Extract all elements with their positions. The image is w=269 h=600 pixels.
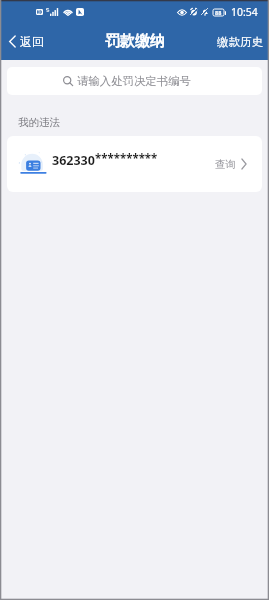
button[interactable]: 362330 [7,136,262,192]
staticText: 362330 [52,152,95,169]
staticText: 请输入处罚决定书编号 [77,74,191,88]
staticText: 10:54 [231,5,258,19]
staticText: 88 [215,9,222,16]
button[interactable]: 请输入处罚决定书编号 [7,67,262,95]
staticText: ********** [95,151,158,167]
staticText: 罚款缴纳 [105,32,165,51]
staticText: 查询 [215,158,236,171]
button[interactable]: 缴款历史 [209,27,269,57]
staticText: 我的违法 [18,116,60,129]
staticText: 缴款历史 [217,35,263,49]
button[interactable]: 返回 [0,28,52,55]
staticText: 返回 [20,34,44,49]
